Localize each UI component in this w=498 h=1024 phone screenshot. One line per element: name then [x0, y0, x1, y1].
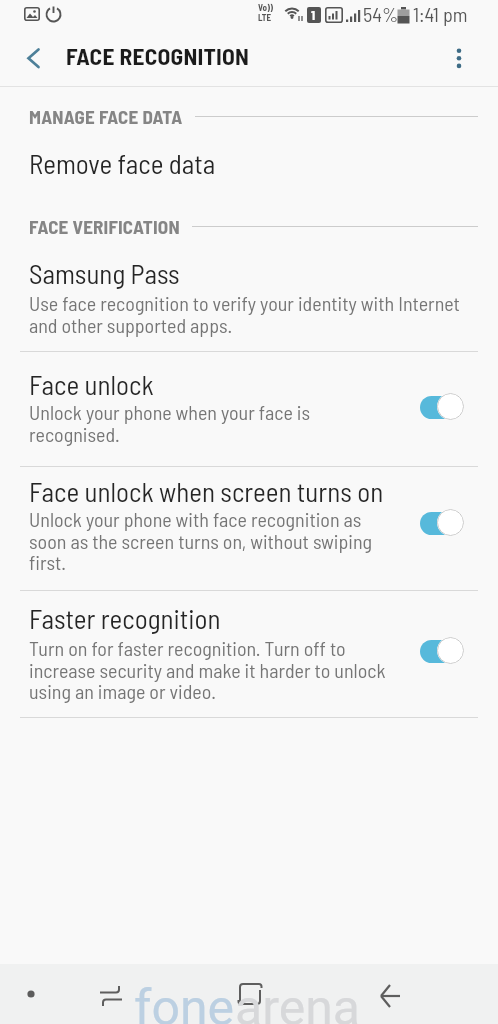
- button[interactable]: Face unlock: [0, 352, 498, 466]
- staticText: MANAGE FACE DATA: [29, 105, 183, 128]
- staticText: Turn on for faster recognition. Turn off…: [29, 636, 386, 703]
- staticText: Face unlock: [29, 368, 154, 400]
- staticText: arena: [235, 979, 360, 1024]
- button[interactable]: Remove face data: [0, 140, 498, 195]
- button[interactable]: [439, 38, 479, 80]
- button[interactable]: [364, 972, 412, 1020]
- button[interactable]: Faster recognition: [0, 591, 498, 717]
- staticText: 1: [311, 7, 316, 23]
- staticText: Unlock your phone with face recognition …: [29, 507, 373, 574]
- button[interactable]: [226, 970, 274, 1018]
- button[interactable]: Face unlock when screen turns on: [0, 467, 498, 590]
- staticText: 54%: [363, 2, 399, 26]
- button[interactable]: Samsung Pass: [0, 250, 498, 351]
- staticText: Unlock your phone when your face is reco…: [29, 400, 310, 446]
- staticText: Remove face data: [29, 147, 216, 179]
- staticText: Face unlock when screen turns on: [29, 475, 384, 507]
- staticText: fone: [134, 979, 235, 1024]
- staticText: Samsung Pass: [29, 257, 180, 289]
- button[interactable]: [14, 40, 56, 80]
- staticText: Faster recognition: [29, 602, 221, 634]
- staticText: Vo)): [258, 2, 273, 13]
- staticText: 1:41 pm: [413, 2, 468, 26]
- staticText: LTE: [258, 12, 272, 23]
- staticText: Use face recognition to verify your iden…: [29, 291, 460, 337]
- button[interactable]: [87, 972, 135, 1020]
- staticText: FACE RECOGNITION: [66, 41, 250, 69]
- staticText: FACE VERIFICATION: [29, 215, 180, 238]
- button[interactable]: [7, 970, 55, 1018]
